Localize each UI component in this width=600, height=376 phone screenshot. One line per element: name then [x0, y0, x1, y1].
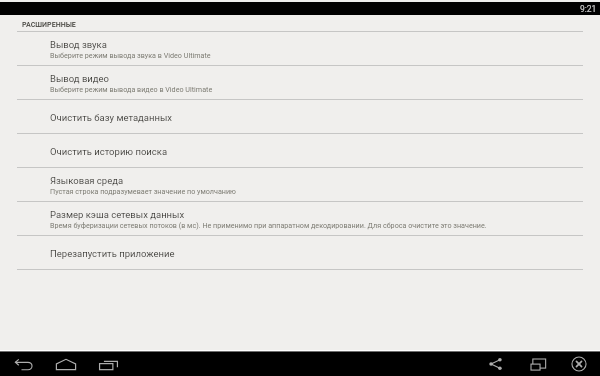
- button[interactable]: Размер кэша сетевых данных: [0, 202, 600, 236]
- button[interactable]: Вывод видео: [0, 66, 600, 100]
- staticText: Размер кэша сетевых данных: [50, 209, 185, 220]
- button[interactable]: Вывод звука: [0, 32, 600, 66]
- button[interactable]: Picture in picture: [526, 352, 552, 376]
- staticText: Очистить историю поиска: [50, 146, 168, 157]
- staticText: Вывод звука: [50, 39, 107, 50]
- staticText: Вывод видео: [50, 73, 110, 84]
- button[interactable]: Перезапустить приложение: [0, 236, 600, 270]
- button[interactable]: Home: [51, 352, 81, 376]
- button[interactable]: Close: [566, 352, 592, 376]
- staticText: Перезапустить приложение: [50, 248, 175, 259]
- staticText: РАСШИРЕННЫЕ: [22, 20, 76, 28]
- button[interactable]: Recent apps: [93, 352, 123, 376]
- button[interactable]: Share: [482, 352, 508, 376]
- staticText: 9:21: [580, 4, 597, 14]
- staticText: Время буферизации сетевых потоков (в мс)…: [50, 221, 487, 229]
- staticText: Выберите режим вывода звука в Video Ulti…: [50, 51, 211, 59]
- staticText: Выберите режим вывода видео в Video Ulti…: [50, 85, 213, 93]
- button[interactable]: Back: [9, 352, 39, 376]
- staticText: Языковая среда: [50, 175, 124, 186]
- button[interactable]: Очистить базу метаданных: [0, 100, 600, 134]
- staticText: Пустая строка подразумевает значение по …: [50, 187, 236, 195]
- button[interactable]: Языковая среда: [0, 168, 600, 202]
- staticText: Очистить базу метаданных: [50, 112, 173, 123]
- button[interactable]: Очистить историю поиска: [0, 134, 600, 168]
